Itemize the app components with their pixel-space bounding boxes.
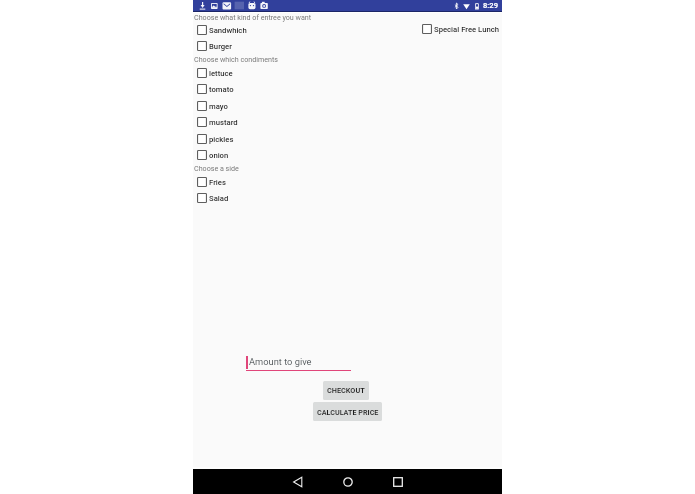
staticText: Choose what kind of entree you want bbox=[194, 13, 312, 21]
button[interactable]: mustard bbox=[197, 117, 238, 127]
staticText: Burger bbox=[209, 42, 232, 51]
staticText: pickles bbox=[209, 135, 234, 144]
staticText: CALCULATE PRICE bbox=[317, 408, 379, 416]
button[interactable]: Fries bbox=[197, 177, 226, 187]
staticText: tomato bbox=[209, 85, 234, 94]
staticText: Sandwhich bbox=[209, 26, 247, 35]
button[interactable]: Amount to give bbox=[246, 352, 351, 371]
staticText: mayo bbox=[209, 102, 228, 111]
staticText: Special Free Lunch bbox=[434, 25, 500, 34]
staticText: lettuce bbox=[209, 69, 233, 78]
staticText: Salad bbox=[209, 194, 229, 203]
button[interactable]: tomato bbox=[197, 84, 234, 94]
button[interactable]: Sandwhich bbox=[197, 25, 247, 35]
staticText: onion bbox=[209, 151, 229, 160]
button[interactable]: onion bbox=[197, 150, 229, 160]
button[interactable]: lettuce bbox=[197, 68, 233, 78]
staticText: Amount to give bbox=[249, 356, 312, 367]
staticText: Choose which condiments bbox=[194, 55, 278, 63]
button[interactable]: Special Free Lunch bbox=[422, 24, 500, 34]
staticText: Fries bbox=[209, 178, 226, 187]
staticText: Choose a side bbox=[194, 164, 239, 172]
button[interactable]: Burger bbox=[197, 41, 232, 51]
button[interactable]: Home bbox=[333, 469, 363, 494]
staticText: 8:29 bbox=[483, 1, 498, 10]
button[interactable]: CHECKOUT bbox=[323, 381, 369, 400]
button[interactable]: CALCULATE PRICE bbox=[313, 402, 382, 421]
button[interactable]: mayo bbox=[197, 101, 228, 111]
button[interactable]: Recent apps bbox=[383, 469, 413, 494]
button[interactable]: Salad bbox=[197, 193, 229, 203]
staticText: CHECKOUT bbox=[327, 386, 365, 395]
button[interactable]: pickles bbox=[197, 134, 234, 144]
staticText: mustard bbox=[209, 118, 238, 127]
button[interactable]: Back bbox=[283, 469, 313, 494]
